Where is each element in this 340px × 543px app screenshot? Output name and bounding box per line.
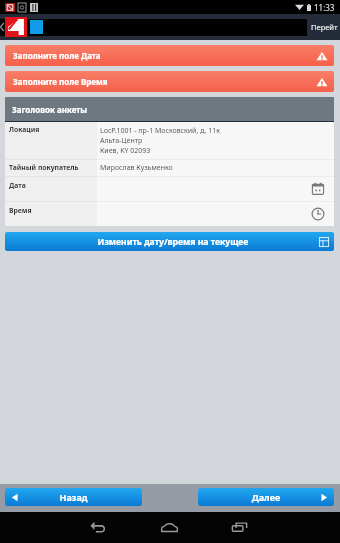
staticText: Мирослав Кузьменко xyxy=(100,163,173,173)
staticText: Локация xyxy=(9,125,40,134)
staticText: Время xyxy=(9,206,32,215)
button[interactable]: Логотип 4Service xyxy=(5,17,27,37)
staticText: Тайный покупатель xyxy=(9,163,79,172)
staticText: Далее xyxy=(212,491,320,503)
staticText: Альта-Центр xyxy=(100,136,143,146)
button[interactable]: Выбрать время xyxy=(5,202,334,226)
staticText: Изменить дату/время на текущее xyxy=(27,236,319,248)
button[interactable]: Заполните поле Время xyxy=(5,71,334,92)
button[interactable]: Перейти xyxy=(307,14,340,40)
button[interactable]: Заполните поле Дата xyxy=(5,45,334,66)
button[interactable]: Недавние приложения xyxy=(221,511,257,542)
staticText: Перейти xyxy=(311,22,340,32)
staticText: Киев, KY 02093 xyxy=(100,146,151,156)
button[interactable]: Главный экран xyxy=(151,511,187,542)
staticText: LocP.1001 - пр-1 Московский, д. 11к xyxy=(100,126,220,136)
staticText: Заполните поле Время xyxy=(13,76,108,87)
button[interactable]: Далее xyxy=(198,488,334,506)
button[interactable]: Назад xyxy=(5,488,142,506)
button[interactable]: Назад xyxy=(80,511,116,542)
staticText: Дата xyxy=(9,181,26,190)
staticText: Назад xyxy=(19,491,128,503)
staticText: Заголовок анкеты xyxy=(12,104,88,115)
staticText: Заполните поле Дата xyxy=(13,50,101,61)
button[interactable]: Выбрать дату xyxy=(5,177,334,201)
button[interactable]: Изменить дату/время на текущее xyxy=(5,232,334,251)
staticText: 11:33 xyxy=(314,2,335,13)
button[interactable]: Вверх xyxy=(0,22,5,32)
